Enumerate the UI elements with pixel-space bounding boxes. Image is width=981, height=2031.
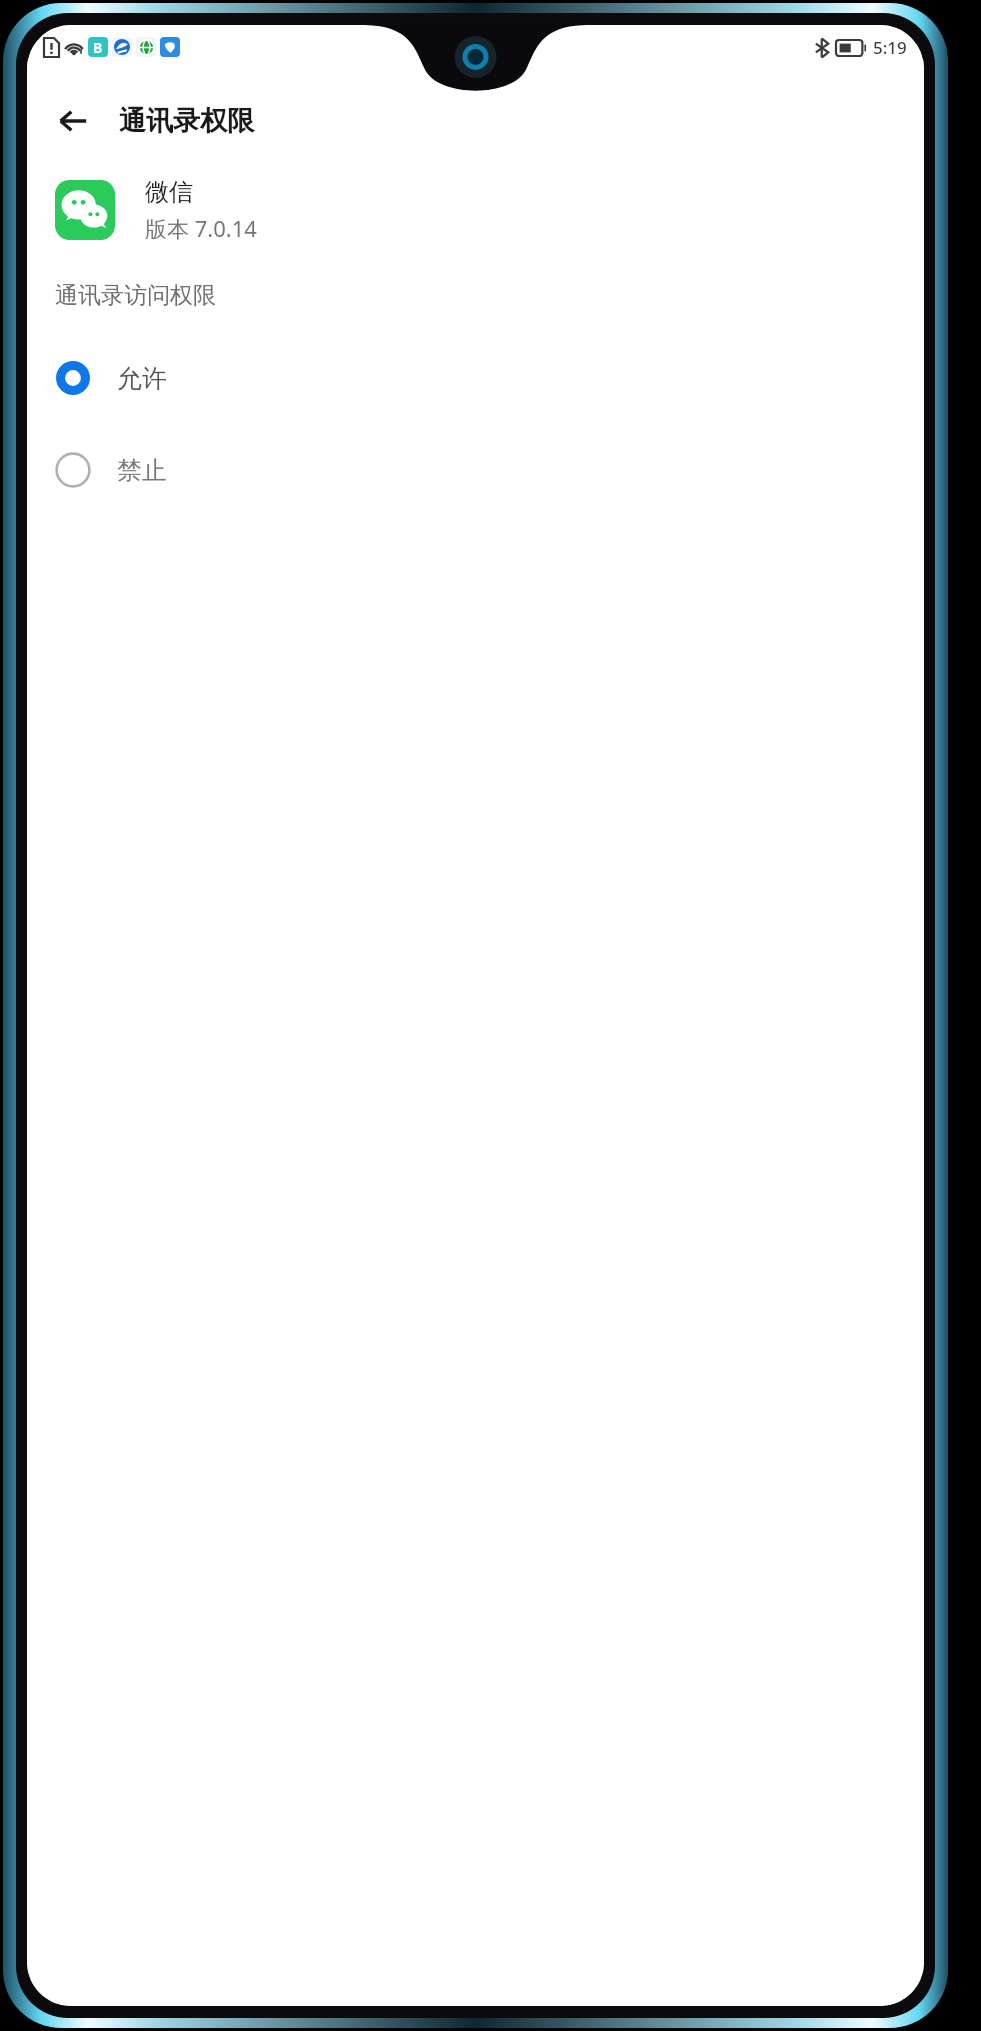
button[interactable]: 返回 [47,95,99,147]
staticText: 5:19 [873,36,907,59]
staticText: 允许 [117,363,167,394]
button[interactable]: 微信 [55,177,924,243]
staticText: 版本 7.0.14 [145,213,257,243]
staticText: 通讯录访问权限 [55,281,216,310]
button[interactable]: 禁止 [27,424,924,516]
staticText: 微信 [145,177,193,207]
staticText: B [93,38,103,57]
button[interactable]: 允许 [27,332,924,424]
staticText: 通讯录权限 [119,104,254,138]
staticText: 禁止 [117,455,167,486]
